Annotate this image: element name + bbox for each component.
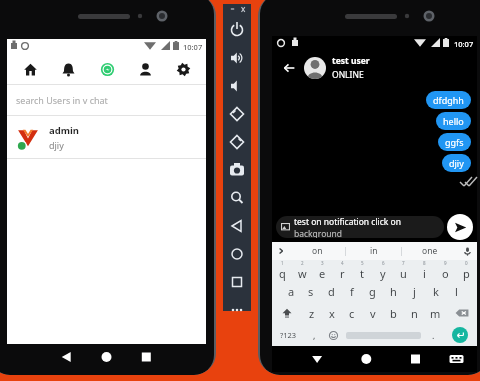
button[interactable]: b [383, 302, 404, 324]
button[interactable]: djiy [442, 154, 471, 172]
staticText: v [370, 306, 376, 321]
button[interactable]: , [305, 324, 323, 346]
button[interactable]: test on notification click on [276, 216, 444, 238]
staticText: on [312, 245, 323, 257]
button[interactable]: Messenger [92, 54, 122, 84]
staticText: s [308, 284, 314, 299]
button[interactable]: x [322, 302, 342, 324]
staticText: 2 [301, 260, 304, 266]
button[interactable]: a [281, 281, 301, 302]
staticText: u [400, 266, 407, 281]
staticText: 1 [281, 260, 284, 266]
button[interactable]: h [383, 281, 404, 302]
button[interactable]: 0 [456, 260, 477, 281]
staticText: one [422, 245, 438, 257]
button[interactable]: 7 [393, 260, 414, 281]
staticText: 10:07 [454, 39, 474, 49]
staticText: y [380, 266, 386, 281]
staticText: , [313, 329, 316, 341]
button[interactable]: 8 [414, 260, 435, 281]
staticText: admin [49, 124, 79, 137]
staticText: hello [443, 115, 464, 127]
staticText: d [328, 284, 335, 299]
button[interactable]: Shift [272, 302, 302, 324]
button[interactable]: g [362, 281, 383, 302]
button[interactable]: l [446, 281, 467, 302]
button[interactable]: n [404, 302, 425, 324]
staticText: . [432, 329, 435, 341]
button[interactable]: v [362, 302, 383, 324]
staticText: m [430, 306, 441, 321]
button[interactable]: 1 [272, 260, 292, 281]
button[interactable]: j [404, 281, 425, 302]
staticText: 6 [382, 260, 385, 266]
button[interactable]: ggfs [438, 133, 471, 151]
staticText: 7 [402, 260, 405, 266]
staticText: g [369, 284, 376, 299]
button[interactable]: 5 [352, 260, 372, 281]
button[interactable]: d [321, 281, 341, 302]
button[interactable]: ?123 [272, 324, 305, 346]
staticText: 10:07 [183, 42, 203, 52]
staticText: w [298, 266, 307, 281]
staticText: n [411, 306, 418, 321]
button[interactable]: Backspace [446, 302, 477, 324]
button[interactable]: 2 [292, 260, 312, 281]
staticText: djiy [449, 157, 464, 169]
button[interactable]: c [342, 302, 362, 324]
button[interactable]: admin [7, 116, 206, 158]
button[interactable]: search Users in v chat [7, 85, 206, 115]
staticText: i [423, 266, 426, 281]
staticText: dfdghh [433, 94, 464, 106]
button[interactable]: Send [447, 214, 473, 240]
button[interactable]: dfdghh [426, 91, 471, 109]
staticText: x [329, 306, 335, 321]
staticText: 3 [321, 260, 324, 266]
staticText: 4 [341, 260, 344, 266]
staticText: t [360, 266, 364, 281]
staticText: a [288, 284, 295, 299]
staticText: f [350, 284, 354, 299]
staticText: j [413, 284, 416, 299]
button[interactable]: m [425, 302, 446, 324]
button[interactable]: 4 [332, 260, 352, 281]
staticText: ?123 [280, 330, 297, 340]
staticText: in [370, 245, 378, 257]
button[interactable]: Back [278, 57, 300, 79]
staticText: z [309, 306, 315, 321]
button[interactable]: f [341, 281, 362, 302]
button[interactable]: Voice input [457, 242, 477, 260]
button[interactable]: 6 [372, 260, 393, 281]
staticText: test on notification click on [294, 216, 401, 228]
staticText: 9 [444, 260, 447, 266]
staticText: h [390, 284, 397, 299]
button[interactable]: Emoji [323, 324, 343, 346]
staticText: 5 [361, 260, 364, 266]
button[interactable]: 9 [435, 260, 456, 281]
button[interactable]: on [290, 242, 345, 260]
button[interactable]: . [424, 324, 442, 346]
button[interactable]: Profile [130, 54, 160, 84]
staticText: b [390, 306, 397, 321]
button[interactable]: s [301, 281, 321, 302]
button[interactable]: Settings [168, 54, 198, 84]
button[interactable]: Expand suggestions [272, 242, 290, 260]
staticText: q [279, 266, 286, 281]
button[interactable]: Space [343, 324, 424, 346]
button[interactable]: 3 [312, 260, 332, 281]
staticText: p [463, 266, 470, 281]
staticText: k [433, 284, 439, 299]
button[interactable]: one [402, 242, 457, 260]
button[interactable]: in [346, 242, 401, 260]
button[interactable]: hello [436, 112, 471, 130]
staticText: background [294, 228, 343, 238]
button[interactable]: z [302, 302, 322, 324]
staticText: test user [332, 55, 370, 67]
button[interactable]: k [425, 281, 446, 302]
staticText: l [455, 284, 458, 299]
button[interactable]: Home [15, 54, 45, 84]
staticText: ggfs [445, 136, 464, 148]
button[interactable]: Enter [442, 324, 477, 346]
button[interactable]: Notifications [53, 54, 83, 84]
staticText: search Users in v chat [16, 94, 108, 106]
